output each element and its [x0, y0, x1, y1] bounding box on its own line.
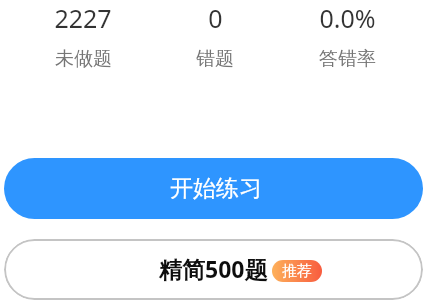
button[interactable]: 2227 — [17, 1, 149, 71]
staticText: 2227 — [54, 1, 112, 35]
staticText: 错题 — [196, 47, 234, 71]
button[interactable]: 0 — [149, 1, 281, 71]
staticText: 未做题 — [55, 47, 112, 71]
button[interactable]: 0.0% — [281, 1, 413, 71]
staticText: 0.0% — [319, 1, 376, 35]
button[interactable]: 精简500题 — [4, 239, 423, 300]
staticText: 精简500题 — [159, 253, 268, 284]
button[interactable]: 开始练习 — [4, 158, 423, 219]
staticText: 答错率 — [319, 47, 376, 71]
staticText: 开始练习 — [170, 174, 262, 203]
staticText: 推荐 — [282, 262, 312, 281]
staticText: 0 — [208, 1, 223, 35]
